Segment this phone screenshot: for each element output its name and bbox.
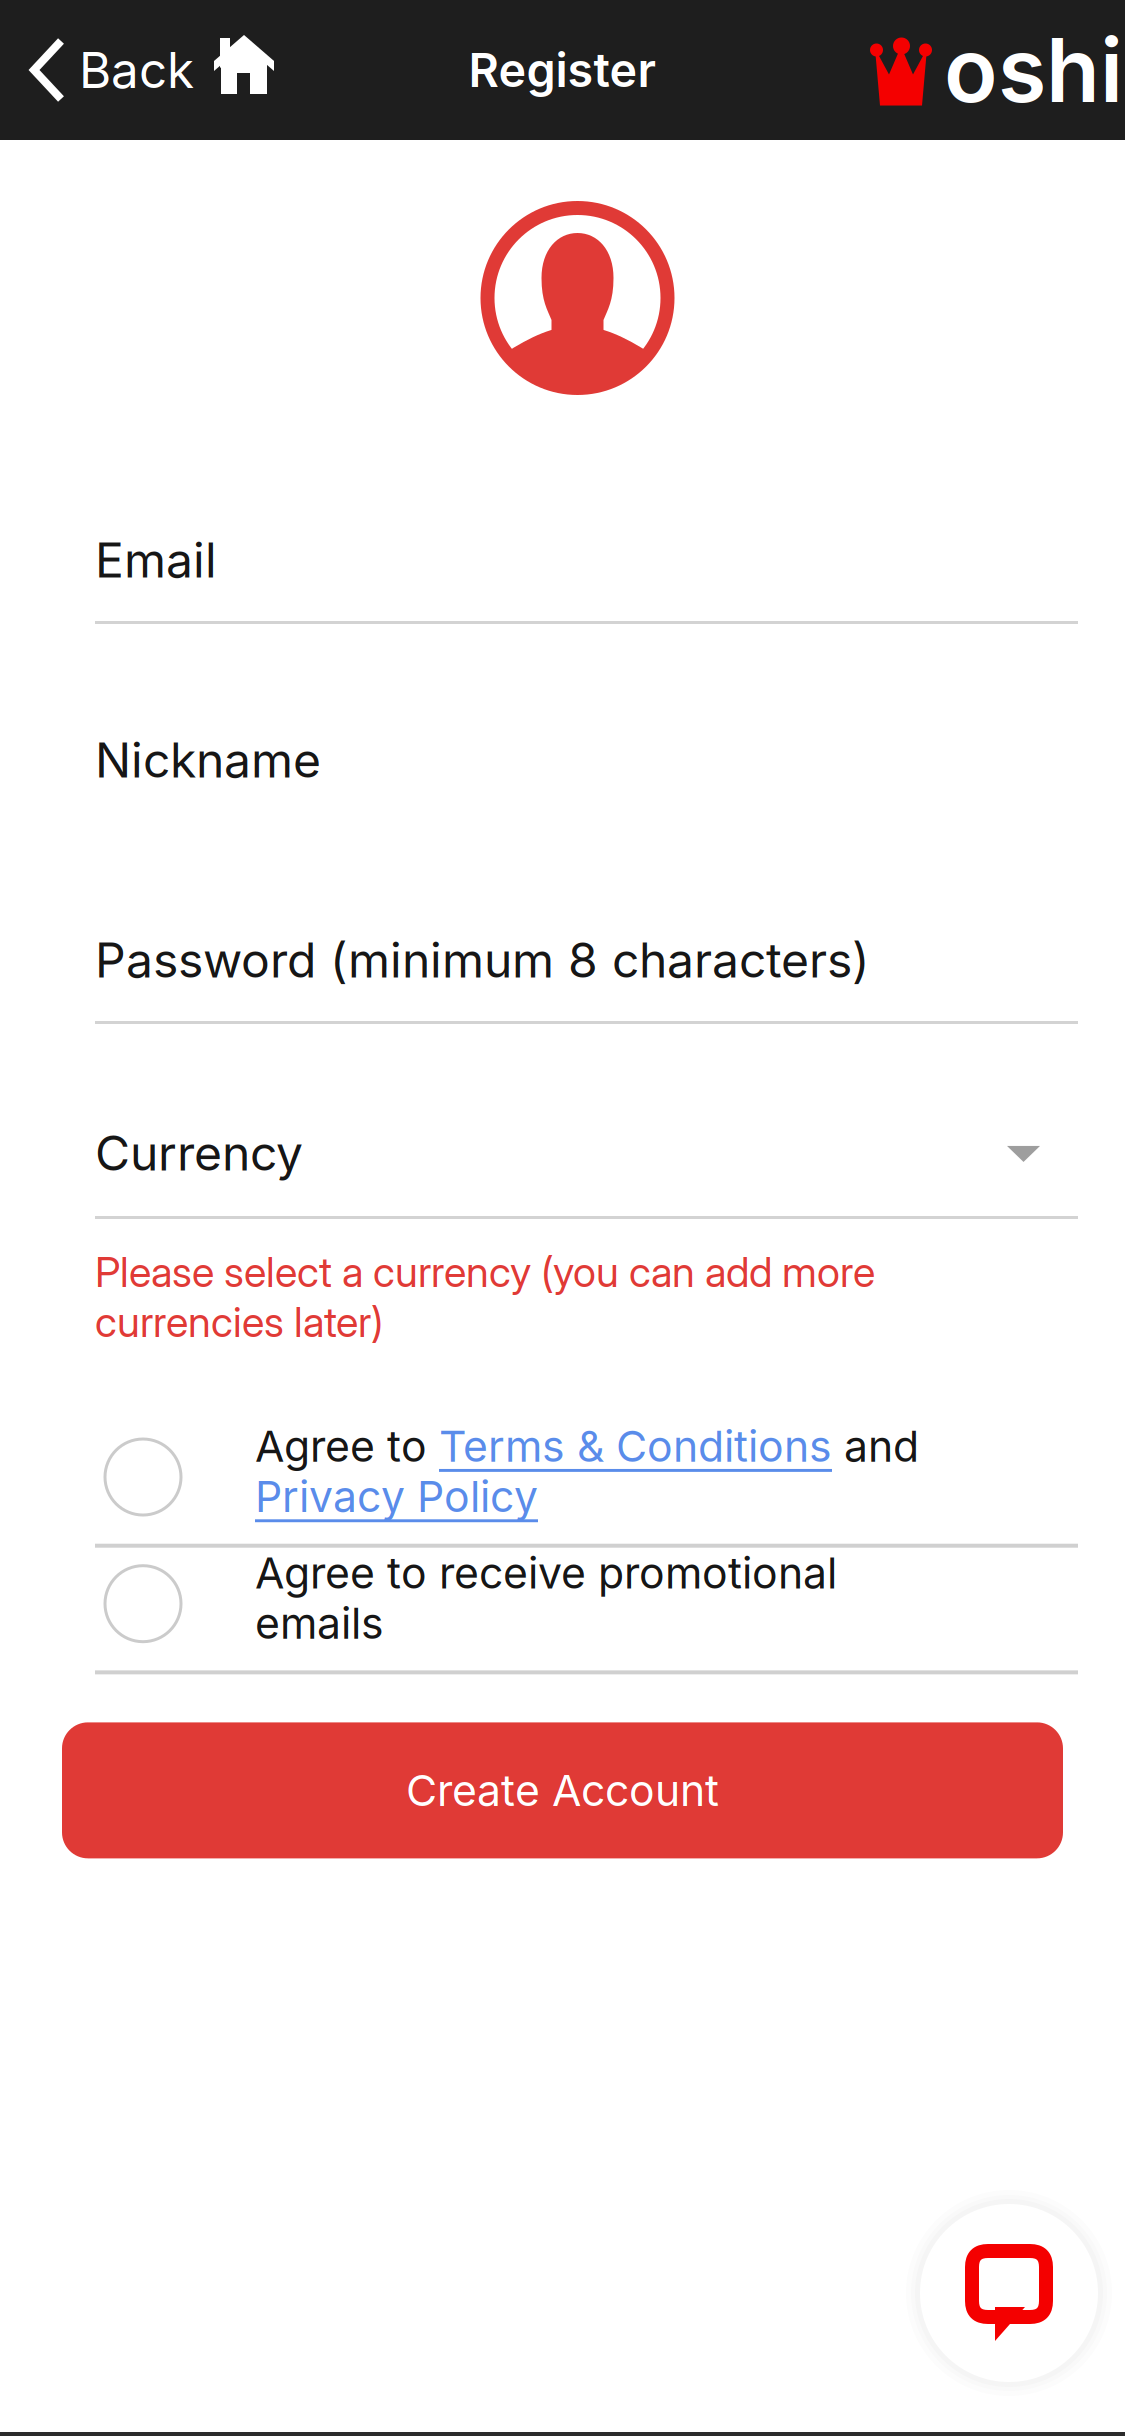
staticText: Password (minimum 8 characters) [95, 931, 870, 989]
staticText: Nickname [95, 731, 321, 789]
staticText: Agree to receive promotional emails [255, 1548, 837, 1648]
staticText: Agree to Terms & Conditions and Privacy … [255, 1421, 919, 1522]
button[interactable]: Create Account [62, 1722, 1063, 1858]
button[interactable]: Back [0, 0, 294, 140]
staticText: oshi [944, 17, 1123, 123]
button[interactable]: Oshi home [870, 0, 1125, 140]
button[interactable]: Currency [95, 1024, 1078, 1219]
staticText: Email [95, 531, 217, 589]
staticText: Register [468, 42, 656, 98]
staticText: Please select a currency (you can add mo… [95, 1247, 875, 1347]
button[interactable]: Agree to Terms & Conditions and Privacy … [95, 1421, 1078, 1548]
staticText: Create Account [406, 1765, 719, 1816]
button[interactable]: Live chat [906, 2190, 1112, 2396]
staticText: Currency [95, 1124, 303, 1182]
button[interactable]: Agree to receive promotional emails [95, 1548, 1078, 1674]
staticText: Back [79, 40, 194, 100]
